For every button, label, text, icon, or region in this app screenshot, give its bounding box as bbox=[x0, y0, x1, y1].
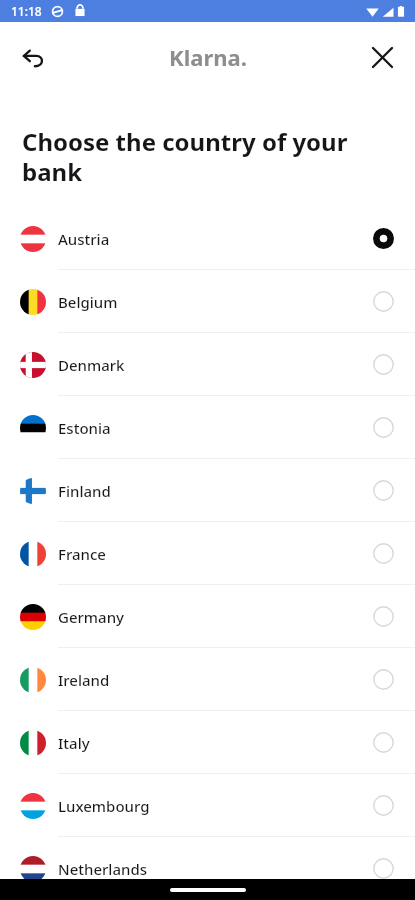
staticText: Austria bbox=[58, 229, 110, 249]
staticText: Luxembourg bbox=[58, 796, 150, 816]
staticText: Germany bbox=[58, 607, 124, 627]
button[interactable]: Estonia bbox=[0, 396, 415, 459]
button[interactable]: Belgium bbox=[0, 270, 415, 333]
staticText: Ireland bbox=[58, 670, 110, 690]
button[interactable]: Austria bbox=[0, 207, 415, 270]
button[interactable]: Denmark bbox=[0, 333, 415, 396]
staticText: 11:18 bbox=[11, 3, 42, 19]
button[interactable]: Back bbox=[11, 35, 55, 79]
staticText: Klarna. bbox=[169, 42, 247, 72]
button[interactable]: France bbox=[0, 522, 415, 585]
button[interactable]: Ireland bbox=[0, 648, 415, 711]
button[interactable]: Finland bbox=[0, 459, 415, 522]
button[interactable]: Netherlands bbox=[0, 837, 415, 900]
staticText: Denmark bbox=[58, 355, 125, 375]
button[interactable]: Italy bbox=[0, 711, 415, 774]
staticText: Choose the country of your bank bbox=[22, 125, 387, 188]
staticText: Italy bbox=[58, 733, 90, 753]
button[interactable]: Close bbox=[360, 35, 404, 79]
staticText: Estonia bbox=[58, 418, 111, 438]
staticText: Netherlands bbox=[58, 859, 147, 879]
button[interactable]: Luxembourg bbox=[0, 774, 415, 837]
staticText: Belgium bbox=[58, 292, 118, 312]
staticText: France bbox=[58, 544, 106, 564]
staticText: Finland bbox=[58, 481, 111, 501]
button[interactable]: Germany bbox=[0, 585, 415, 648]
